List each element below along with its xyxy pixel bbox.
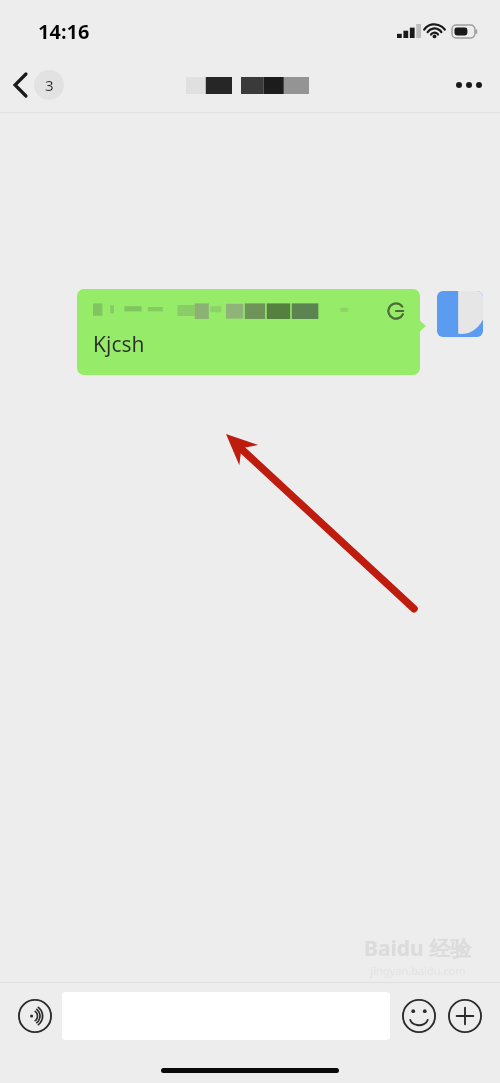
staticText: Baidu 经验: [364, 934, 472, 963]
button[interactable]: Back, 3 unread: [0, 64, 74, 106]
button[interactable]: Emoji: [396, 993, 442, 1039]
staticText: jingyan.baidu.com: [370, 963, 466, 978]
button[interactable]: More options: [438, 68, 500, 102]
staticText: 3: [45, 75, 54, 95]
button[interactable]: Avatar: [437, 291, 483, 337]
button[interactable]: Translate: [77, 289, 420, 375]
staticText: Kjcsh: [93, 330, 145, 359]
button[interactable]: More functions: [442, 993, 488, 1039]
staticText: 14:16: [38, 18, 90, 45]
button[interactable]: Voice message: [12, 993, 58, 1039]
other: Translate: [386, 301, 406, 321]
